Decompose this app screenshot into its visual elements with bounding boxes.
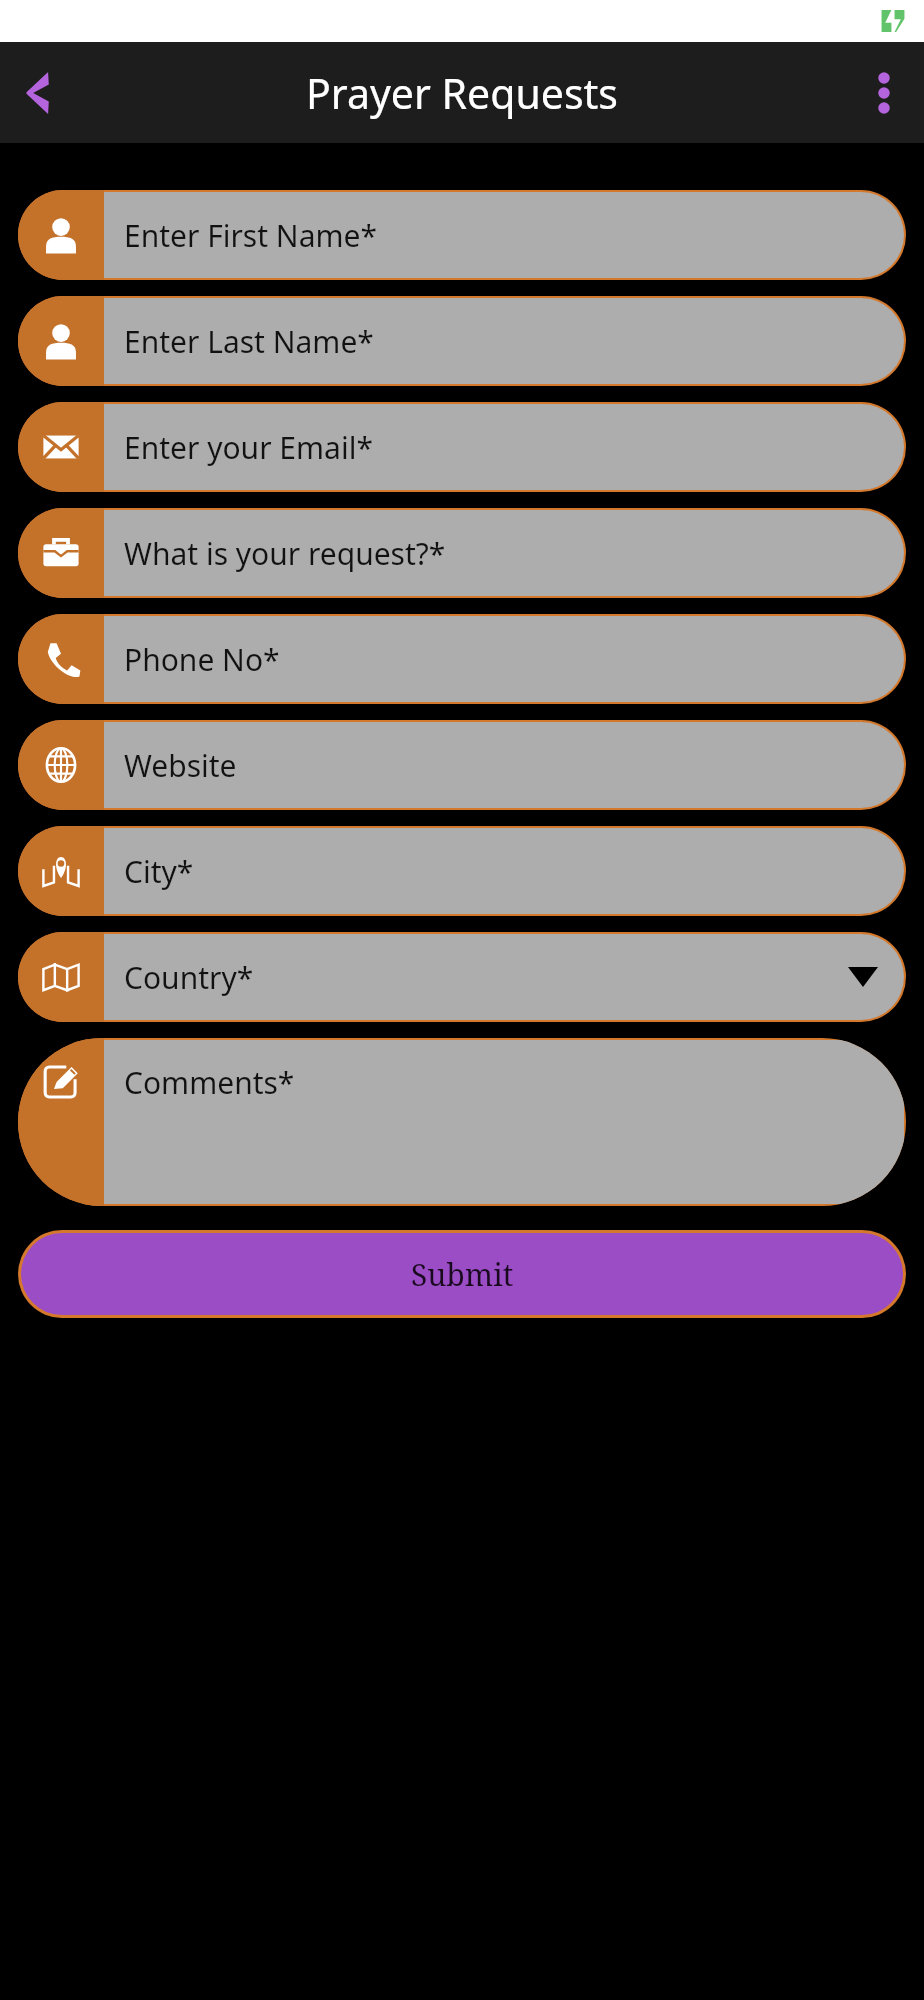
staticText: Phone No* (124, 639, 280, 680)
staticText: Country* (124, 957, 254, 998)
button[interactable]: Enter Last Name* (18, 296, 906, 386)
staticText: What is your request?* (124, 533, 446, 574)
button[interactable]: Phone No* (18, 614, 906, 704)
button[interactable]: Comments* (18, 1038, 906, 1206)
button[interactable]: More options (856, 65, 912, 121)
button[interactable]: Enter First Name* (18, 190, 906, 280)
button[interactable]: Country* (18, 932, 906, 1022)
button[interactable]: City* (18, 826, 906, 916)
staticText: City* (124, 851, 194, 892)
staticText: Prayer Requests (306, 65, 618, 121)
staticText: Website (124, 745, 237, 786)
button[interactable]: What is your request?* (18, 508, 906, 598)
staticText: Submit (411, 1254, 514, 1295)
staticText: Enter Last Name* (124, 321, 374, 362)
staticText: Comments* (124, 1062, 295, 1103)
button[interactable]: Back (10, 65, 66, 121)
button[interactable]: Enter your Email* (18, 402, 906, 492)
staticText: Enter First Name* (124, 215, 377, 256)
button[interactable]: Website (18, 720, 906, 810)
button[interactable]: Submit (21, 1233, 903, 1315)
staticText: Enter your Email* (124, 427, 373, 468)
